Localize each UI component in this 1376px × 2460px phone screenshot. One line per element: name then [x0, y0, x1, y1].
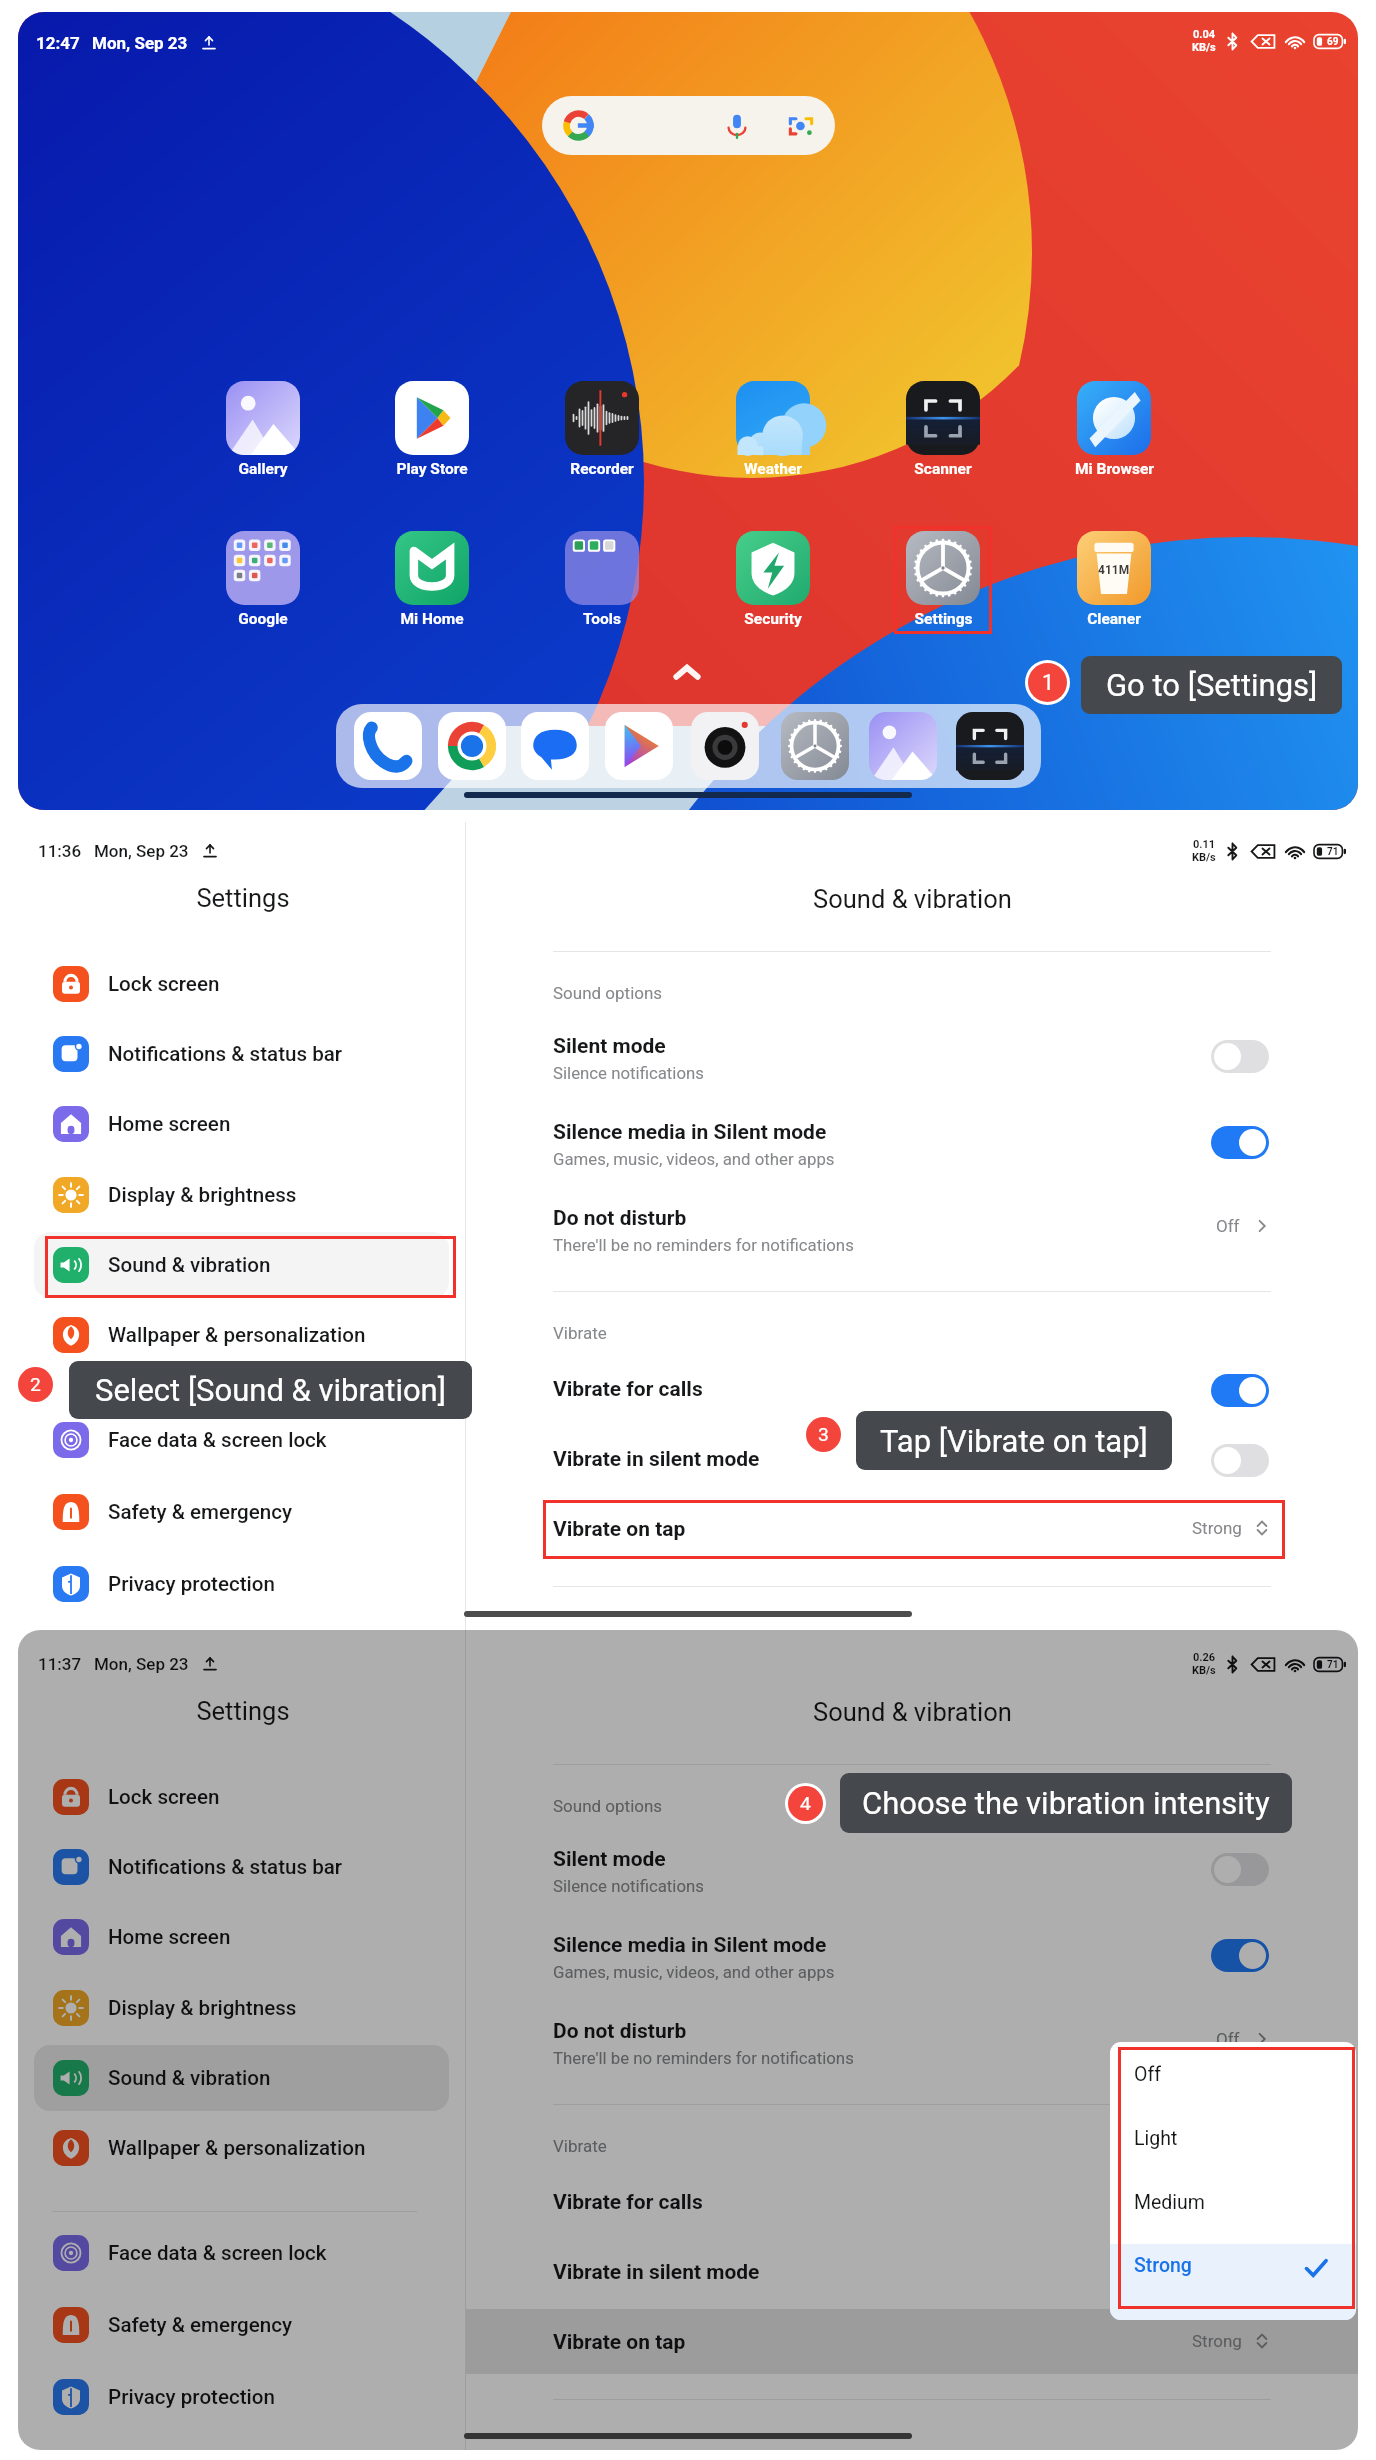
button[interactable]: Tools	[547, 531, 657, 628]
button[interactable]: Home screen	[34, 1909, 449, 1965]
button[interactable]: Mi Home	[377, 531, 487, 628]
staticText: Sound options	[553, 1796, 663, 1816]
staticText: Display & brightness	[108, 1183, 297, 1207]
other: Voice search	[723, 112, 751, 140]
staticText: Go to [Settings]	[1106, 667, 1318, 703]
button[interactable]: Face data & screen lock	[34, 1412, 449, 1468]
button[interactable]: Tap [Vibrate on tap]	[856, 1411, 1172, 1470]
button[interactable]: Vibrate on tap	[553, 1517, 1173, 1547]
button[interactable]: gplay	[605, 712, 673, 780]
button[interactable]: Sound & vibration	[34, 2050, 449, 2106]
button[interactable]: phone	[354, 712, 422, 780]
button[interactable]: Choose the vibration intensity	[840, 1773, 1292, 1833]
button[interactable]: Light	[1110, 2127, 1356, 2191]
button[interactable]: gallery	[869, 712, 937, 780]
button[interactable]: Toggle	[1211, 1126, 1269, 1159]
button[interactable]: Go to [Settings]	[1081, 656, 1342, 714]
staticText: 0.11	[1193, 838, 1216, 851]
button[interactable]: Sound & vibration	[34, 1237, 449, 1293]
button[interactable]: Strong	[1110, 2254, 1356, 2318]
staticText: Light	[1134, 2127, 1178, 2150]
button[interactable]: Do not disturb	[553, 1206, 1173, 1260]
staticText: Silence notifications	[553, 1876, 704, 1896]
button[interactable]: Display & brightness	[34, 1980, 449, 2036]
button[interactable]: Do not disturb	[553, 2019, 1173, 2073]
button[interactable]: Notifications & status bar	[34, 1026, 449, 1082]
staticText: Safety & emergency	[108, 1500, 293, 1524]
button[interactable]: Silent mode	[553, 1034, 1173, 1088]
staticText: Choose the vibration intensity	[862, 1785, 1270, 1821]
button[interactable]: scanner	[956, 712, 1024, 780]
button[interactable]: Silent mode	[553, 1847, 1173, 1901]
button[interactable]: Scanner	[888, 381, 998, 478]
button[interactable]: Vibrate in silent mode	[553, 2260, 1173, 2290]
button[interactable]: Vibrate on tap	[553, 2330, 1173, 2360]
button[interactable]: Lock screen	[34, 956, 449, 1012]
button[interactable]: Off	[1110, 2063, 1356, 2127]
button[interactable]: Lock screen	[34, 1769, 449, 1825]
staticText: 0.04	[1193, 28, 1216, 41]
button[interactable]: messages	[521, 712, 589, 780]
button[interactable]: Home screen	[34, 1096, 449, 1152]
button[interactable]: settings	[781, 712, 849, 780]
staticText: Settings	[914, 610, 973, 628]
button[interactable]: Wallpaper & personalization	[34, 2120, 449, 2176]
button[interactable]: Face data & screen lock	[34, 2225, 449, 2281]
button[interactable]: Gallery	[208, 381, 318, 478]
button[interactable]: Privacy protection	[34, 1556, 449, 1612]
button[interactable]: Vibrate in silent mode	[553, 1447, 1173, 1477]
button[interactable]: Security	[718, 531, 828, 628]
button[interactable]: Voice search	[542, 96, 835, 155]
button[interactable]: Settings	[888, 531, 998, 628]
button[interactable]: Medium	[1110, 2191, 1356, 2255]
button[interactable]: Toggle	[1211, 1374, 1269, 1407]
staticText: 71	[1327, 846, 1339, 858]
button[interactable]: Silence media in Silent mode	[553, 1120, 1173, 1174]
button[interactable]: Select [Sound & vibration]	[69, 1361, 472, 1419]
button[interactable]: Play Store	[377, 381, 487, 478]
button[interactable]: Recorder	[547, 381, 657, 478]
button[interactable]: Safety & emergency	[34, 2297, 449, 2353]
staticText: Silent mode	[553, 1034, 666, 1059]
staticText: 3	[818, 1423, 829, 1446]
button[interactable]: Display & brightness	[34, 1167, 449, 1223]
staticText: Display & brightness	[108, 1996, 297, 2020]
staticText: Scanner	[914, 460, 972, 478]
button[interactable]: Privacy protection	[34, 2369, 449, 2425]
staticText: Do not disturb	[553, 1206, 687, 1231]
button[interactable]: Google	[208, 531, 318, 628]
button[interactable]: Silence media in Silent mode	[553, 1933, 1173, 1987]
button[interactable]: Weather	[718, 381, 828, 478]
button[interactable]: chrome	[438, 712, 506, 780]
button[interactable]: Toggle	[1211, 1939, 1269, 1972]
staticText: KB/s	[1192, 1664, 1216, 1677]
button[interactable]: Vibrate for calls	[553, 2190, 1173, 2220]
button[interactable]: Vibrate for calls	[553, 1377, 1173, 1407]
staticText: Silence media in Silent mode	[553, 1120, 827, 1145]
button[interactable]: Wallpaper & personalization	[34, 1307, 449, 1363]
staticText: Lock screen	[108, 1785, 220, 1809]
button[interactable]: Toggle	[1211, 1444, 1269, 1477]
button[interactable]: Toggle	[1211, 1040, 1269, 1073]
staticText: Tools	[583, 610, 621, 628]
staticText: Strong	[1192, 2331, 1242, 2351]
button[interactable]: Safety & emergency	[34, 1484, 449, 1540]
button[interactable]: camera	[691, 712, 759, 780]
staticText: Cleaner	[1087, 610, 1141, 628]
staticText: Sound & vibration	[108, 2066, 271, 2090]
staticText: Security	[744, 610, 802, 628]
staticText: Privacy protection	[108, 2385, 275, 2409]
button[interactable]: Notifications & status bar	[34, 1839, 449, 1895]
button[interactable]: Toggle	[1211, 1853, 1269, 1886]
staticText: Sound options	[553, 983, 663, 1003]
staticText: Vibrate on tap	[553, 1517, 686, 1542]
staticText: Weather	[744, 460, 802, 478]
staticText: 4	[800, 1792, 811, 1815]
button[interactable]: 411M	[1059, 531, 1169, 628]
staticText: Games, music, videos, and other apps	[553, 1962, 835, 1982]
button[interactable]: Mi Browser	[1059, 381, 1169, 478]
staticText: Face data & screen lock	[108, 1428, 327, 1452]
staticText: KB/s	[1192, 41, 1216, 54]
